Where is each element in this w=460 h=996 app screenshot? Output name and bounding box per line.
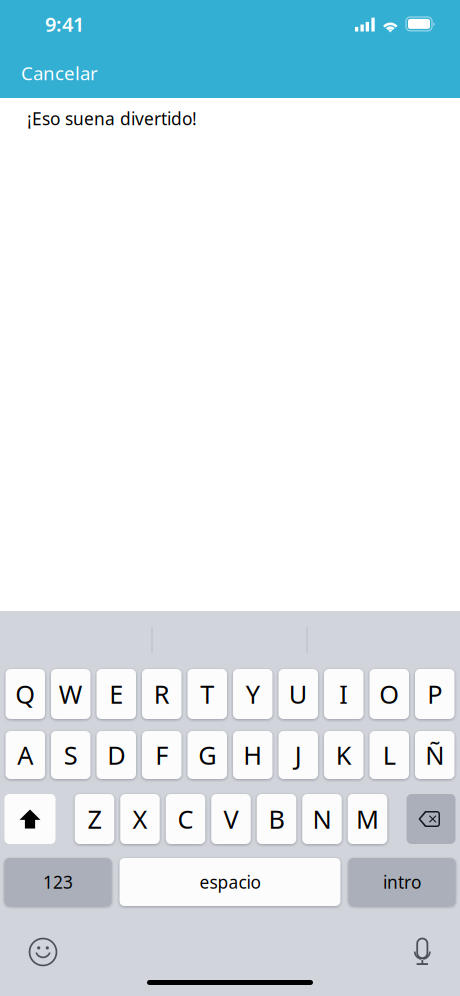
button[interactable]: F xyxy=(142,731,181,779)
staticText: W xyxy=(59,677,83,711)
staticText: ¡Eso suena divertido! xyxy=(27,107,197,130)
button[interactable]: B xyxy=(257,794,296,844)
button[interactable]: 123 xyxy=(4,858,111,906)
button[interactable]: intro xyxy=(348,858,455,906)
staticText: T xyxy=(200,677,214,711)
button[interactable]: E xyxy=(96,669,136,719)
staticText: S xyxy=(64,738,78,772)
staticText: J xyxy=(295,738,302,772)
staticText: M xyxy=(356,802,379,836)
staticText: 123 xyxy=(43,870,73,893)
button[interactable]: R xyxy=(142,669,181,719)
button[interactable]: I xyxy=(324,669,363,719)
button[interactable]: Q xyxy=(5,669,45,719)
button[interactable]: Delete xyxy=(406,794,455,844)
staticText: C xyxy=(177,802,193,836)
button[interactable]: P xyxy=(415,669,454,719)
staticText: U xyxy=(289,677,308,711)
staticText: espacio xyxy=(199,870,260,893)
button[interactable]: G xyxy=(187,731,227,779)
button[interactable]: Emoji xyxy=(0,936,69,968)
button[interactable]: L xyxy=(369,731,409,779)
staticText: Q xyxy=(15,677,35,711)
staticText: H xyxy=(243,738,262,772)
button[interactable]: W xyxy=(51,669,90,719)
staticText: I xyxy=(339,677,348,711)
button[interactable]: Cancelar xyxy=(0,48,110,98)
staticText: Ñ xyxy=(425,738,444,772)
staticText: V xyxy=(223,802,238,836)
staticText: Y xyxy=(246,677,260,711)
staticText: B xyxy=(268,802,284,836)
button[interactable]: A xyxy=(5,731,45,779)
button[interactable]: Ñ xyxy=(415,731,454,779)
button[interactable]: C xyxy=(166,794,205,844)
button[interactable]: X xyxy=(120,794,160,844)
staticText: A xyxy=(17,738,33,772)
staticText: G xyxy=(198,738,216,772)
staticText: O xyxy=(379,677,399,711)
button[interactable]: N xyxy=(302,794,342,844)
staticText: N xyxy=(312,802,331,836)
button[interactable]: U xyxy=(278,669,318,719)
button[interactable]: Y xyxy=(233,669,272,719)
button[interactable]: Z xyxy=(75,794,114,844)
button[interactable]: Dictation xyxy=(401,936,460,968)
staticText: E xyxy=(109,677,123,711)
button[interactable]: M xyxy=(348,794,387,844)
staticText: K xyxy=(336,738,352,772)
staticText: Z xyxy=(87,802,101,836)
staticText: R xyxy=(154,677,170,711)
staticText: intro xyxy=(383,870,421,893)
button[interactable]: S xyxy=(51,731,90,779)
button[interactable]: K xyxy=(324,731,363,779)
button[interactable]: espacio xyxy=(119,858,340,906)
button[interactable]: T xyxy=(187,669,227,719)
button[interactable]: V xyxy=(211,794,251,844)
button[interactable]: O xyxy=(369,669,409,719)
staticText: D xyxy=(107,738,125,772)
staticText: 9:41 xyxy=(45,11,84,37)
staticText: X xyxy=(132,802,147,836)
staticText: Cancelar xyxy=(21,61,98,85)
button[interactable]: J xyxy=(278,731,318,779)
staticText: P xyxy=(427,677,442,711)
button[interactable]: H xyxy=(233,731,272,779)
staticText: L xyxy=(383,738,396,772)
button[interactable]: D xyxy=(96,731,136,779)
staticText: F xyxy=(155,738,168,772)
button[interactable]: Shift xyxy=(4,794,55,844)
